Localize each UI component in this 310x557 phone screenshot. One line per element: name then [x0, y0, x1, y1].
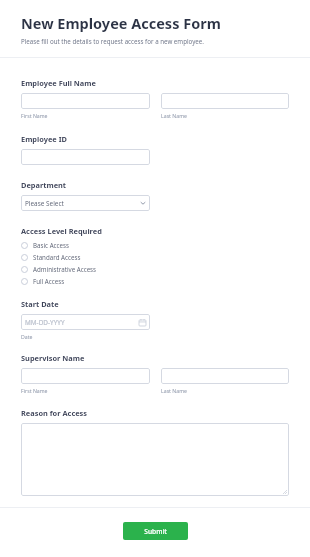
- staticText: Administrative Access: [33, 265, 97, 273]
- staticText: Supervisor Name: [21, 353, 85, 363]
- staticText: New Employee Access Form: [21, 13, 221, 33]
- button[interactable]: Supervisor Name first name: [21, 368, 150, 384]
- staticText: Reason for Access: [21, 408, 88, 418]
- staticText: Start Date: [21, 299, 59, 309]
- button[interactable]: Submit: [123, 522, 188, 540]
- staticText: Last Name: [161, 387, 187, 394]
- button[interactable]: Basic Access: [21, 239, 289, 251]
- staticText: Access Level Required: [21, 226, 102, 236]
- staticText: Standard Access: [33, 253, 81, 261]
- button[interactable]: Reason for Access: [21, 423, 289, 496]
- staticText: Date: [21, 333, 33, 340]
- staticText: Submit: [144, 527, 167, 536]
- staticText: Basic Access: [33, 241, 69, 249]
- staticText: Department: [21, 180, 67, 190]
- button[interactable]: Employee ID: [21, 149, 150, 165]
- staticText: Employee Full Name: [21, 78, 96, 88]
- button[interactable]: Standard Access: [21, 251, 289, 263]
- button[interactable]: Administrative Access: [21, 263, 289, 275]
- button[interactable]: Full Access: [21, 275, 289, 287]
- staticText: Please fill out the details to request a…: [21, 37, 204, 45]
- button[interactable]: Start Date: [21, 314, 150, 330]
- button[interactable]: Employee Full Name last name: [161, 93, 289, 109]
- staticText: Full Access: [33, 277, 65, 285]
- staticText: Employee ID: [21, 134, 67, 144]
- button[interactable]: Employee Full Name first name: [21, 93, 150, 109]
- staticText: MM-DD-YYYY: [25, 318, 139, 327]
- staticText: Please Select: [25, 199, 140, 208]
- button[interactable]: Supervisor Name last name: [161, 368, 289, 384]
- staticText: First Name: [21, 112, 48, 119]
- staticText: First Name: [21, 387, 48, 394]
- staticText: Last Name: [161, 112, 187, 119]
- button[interactable]: Department: [21, 195, 150, 211]
